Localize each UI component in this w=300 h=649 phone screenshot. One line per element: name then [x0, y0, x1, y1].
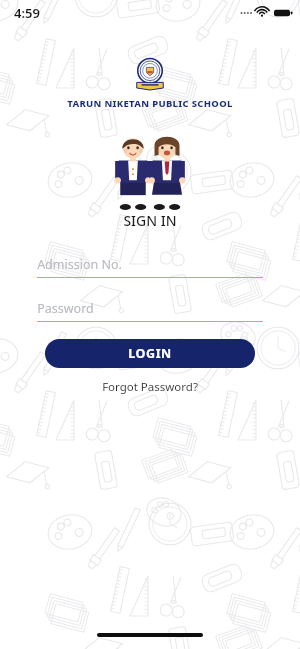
staticText: Admission No.	[37, 256, 122, 273]
staticText: Password	[37, 300, 94, 317]
button[interactable]: LOGIN	[45, 339, 255, 368]
button[interactable]: Password	[37, 300, 263, 322]
staticText: Forgot Password?	[102, 379, 198, 395]
staticText: TARUN NIKETAN PUBLIC SCHOOL	[67, 97, 233, 110]
button[interactable]: Admission No.	[37, 256, 263, 278]
staticText: 4:59	[14, 4, 40, 22]
button[interactable]: Forgot Password?	[94, 377, 206, 397]
staticText: LOGIN	[128, 345, 172, 362]
staticText: SIGN IN	[123, 211, 177, 230]
